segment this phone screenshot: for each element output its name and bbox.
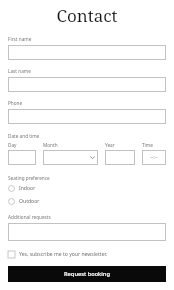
staticText: Time [142, 142, 153, 148]
staticText: Month [43, 142, 58, 148]
button[interactable]: Year [105, 150, 135, 165]
staticText: Indoor [19, 185, 36, 192]
button[interactable]: Outdoor [8, 198, 166, 205]
staticText: Outdoor [19, 198, 40, 205]
staticText: First name [8, 36, 32, 42]
button[interactable]: Request booking [8, 266, 166, 282]
staticText: Last name [8, 68, 31, 74]
button[interactable]: Indoor [8, 185, 166, 192]
button[interactable]: Select time [142, 150, 166, 165]
button[interactable]: Day [8, 150, 36, 165]
staticText: --:-- [150, 154, 158, 161]
staticText: Contact [56, 4, 118, 27]
staticText: Request booking [64, 270, 110, 278]
button[interactable]: Last name [8, 77, 166, 92]
staticText: Date and time [8, 133, 40, 139]
button[interactable]: Yes, subscribe me to your newsletter. [8, 251, 166, 258]
staticText: Day [8, 142, 17, 148]
button[interactable]: First name [8, 45, 166, 60]
staticText: Yes, subscribe me to your newsletter. [19, 251, 108, 258]
button[interactable]: Additional requests [8, 223, 166, 241]
staticText: Phone [8, 100, 23, 106]
button[interactable]: Phone [8, 109, 166, 124]
staticText: Additional requests [8, 214, 51, 220]
button[interactable]: Select month [43, 150, 98, 165]
staticText: Seating preference [8, 175, 50, 181]
staticText: Year [105, 142, 115, 148]
